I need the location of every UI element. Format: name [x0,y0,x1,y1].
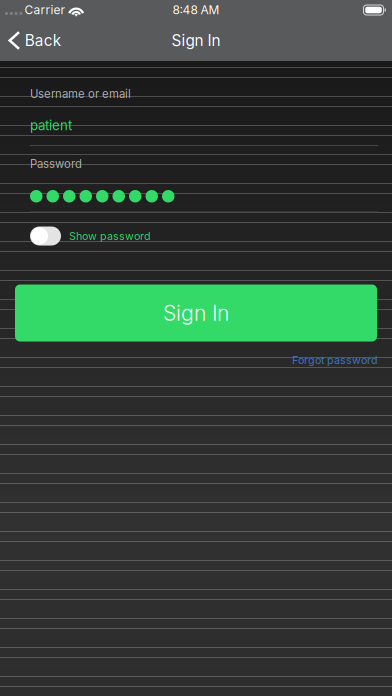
button[interactable]: Sign In [15,284,377,341]
staticText: Show password [69,229,151,242]
staticText: Sign In [163,300,229,326]
staticText: Sign In [171,31,220,50]
staticText: Username or email [30,87,131,101]
staticText: Password [30,157,82,171]
staticText: Back [25,31,61,50]
button[interactable]: Show password [30,226,151,245]
button[interactable]: Back [0,20,71,61]
staticText: Carrier [24,3,65,17]
staticText: 8:48 AM [172,3,219,17]
staticText: Forgot password [292,353,378,366]
staticText: patient [30,117,72,133]
button[interactable]: Forgot password [292,353,378,366]
